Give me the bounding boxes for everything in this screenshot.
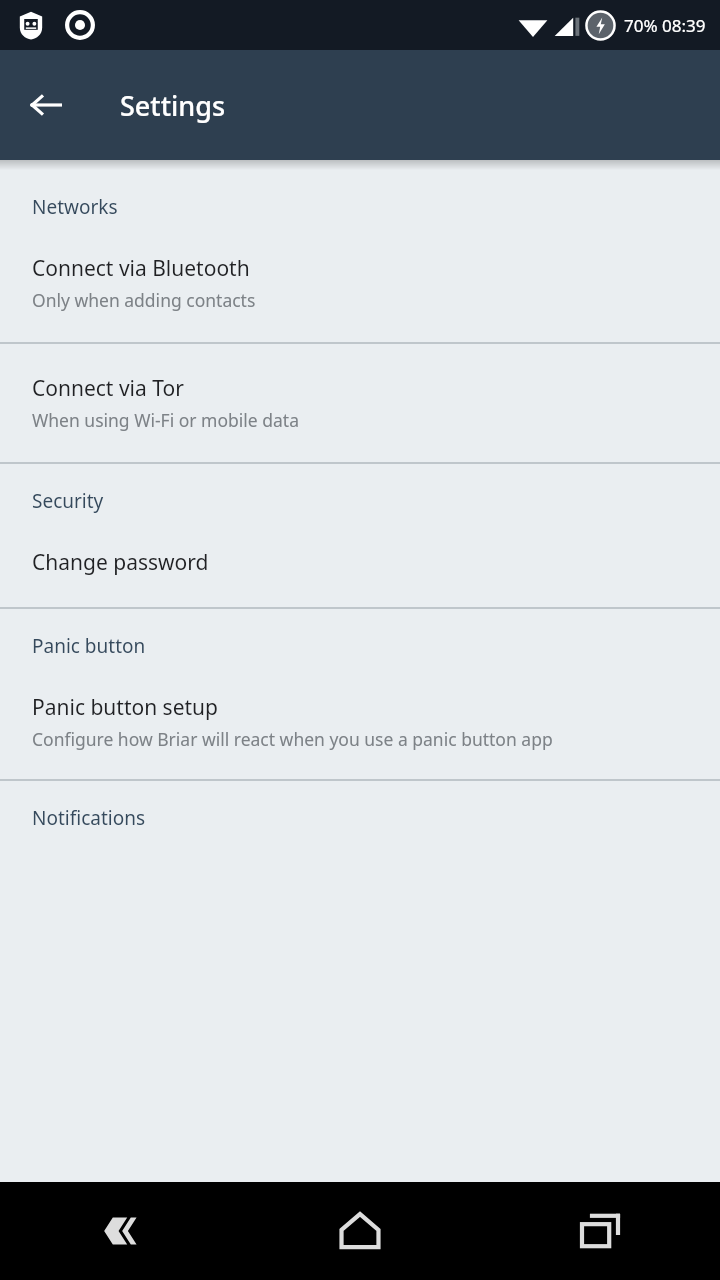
staticText: Settings xyxy=(120,87,226,124)
button[interactable]: Change password xyxy=(0,548,720,607)
staticText: Connect via Bluetooth xyxy=(32,254,250,283)
staticText: Only when adding contacts xyxy=(32,288,256,312)
staticText: Security xyxy=(32,488,104,514)
button[interactable]: Connect via Tor xyxy=(0,344,720,462)
staticText: Notifications xyxy=(32,805,146,831)
staticText: Networks xyxy=(32,194,118,220)
staticText: Connect via Tor xyxy=(32,374,184,403)
button[interactable]: Back xyxy=(0,1182,240,1280)
staticText: Configure how Briar will react when you … xyxy=(32,727,553,751)
staticText: Change password xyxy=(32,548,209,577)
staticText: 70% 08:39 xyxy=(624,14,706,37)
staticText: Panic button xyxy=(32,633,146,659)
button[interactable]: Recent apps xyxy=(480,1182,720,1280)
staticText: When using Wi-Fi or mobile data xyxy=(32,408,299,432)
button[interactable]: Connect via Bluetooth xyxy=(0,254,720,342)
button[interactable]: Panic button setup xyxy=(0,693,720,779)
button[interactable]: Home xyxy=(240,1182,480,1280)
staticText: Panic button setup xyxy=(32,693,218,722)
button[interactable]: Back xyxy=(18,77,74,133)
